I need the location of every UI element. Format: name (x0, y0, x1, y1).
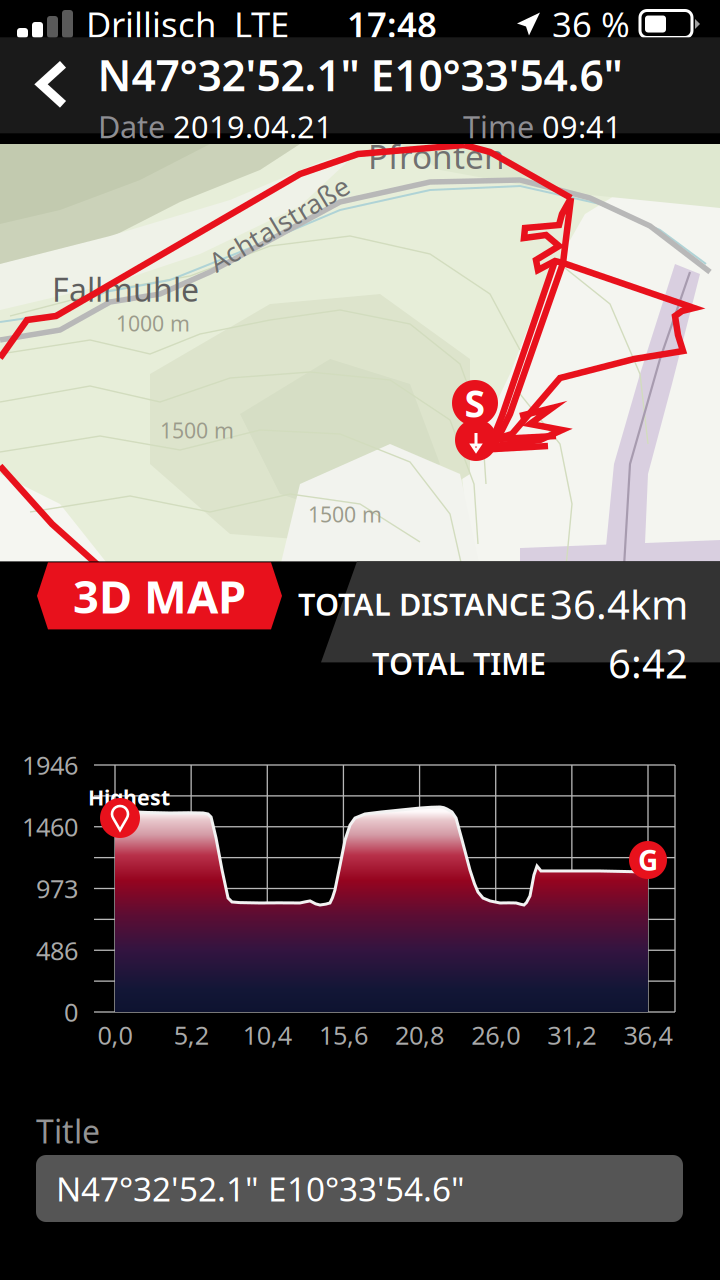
staticText: N47°32'52.1" E10°33'54.6" (56, 1166, 465, 1211)
staticText: G (638, 841, 658, 879)
staticText: Achtalstraße (200, 206, 358, 241)
staticText: 3D MAP (73, 566, 246, 626)
staticText: 36,4 (623, 1018, 672, 1052)
staticText: 0 (64, 995, 78, 1029)
staticText: 1946 (22, 748, 78, 782)
staticText: 17:48 (347, 1, 437, 47)
staticText: 6:42 (608, 636, 688, 690)
staticText: Fallmuhle (52, 268, 199, 310)
staticText: 1000 m (116, 309, 190, 337)
staticText: 26,0 (471, 1018, 520, 1052)
staticText: Date (98, 106, 173, 147)
staticText: N47°32'52.1" E10°33'54.6" (97, 46, 622, 103)
staticText: TOTAL DISTANCE (298, 584, 546, 624)
staticText: Title (36, 1110, 100, 1152)
staticText: 5,2 (174, 1018, 209, 1052)
button[interactable]: Back (18, 40, 86, 128)
staticText: 486 (36, 933, 78, 967)
staticText: 0,0 (97, 1018, 132, 1052)
staticText: 36.4km (550, 577, 688, 630)
staticText: Pfronten (368, 134, 505, 178)
staticText: 20,8 (395, 1018, 444, 1052)
button[interactable]: N47°32'52.1" E10°33'54.6" (36, 1155, 683, 1222)
staticText: 31,2 (547, 1018, 596, 1052)
button[interactable]: 3D MAP (37, 562, 282, 629)
staticText: Drillisch (86, 1, 216, 47)
staticText: Time (463, 106, 542, 147)
staticText: 15,6 (319, 1018, 368, 1052)
staticText: TOTAL TIME (372, 643, 546, 683)
staticText: 973 (36, 872, 78, 905)
staticText: 2019.04.21 (173, 106, 333, 147)
staticText: 1460 (22, 810, 78, 843)
staticText: 1500 m (308, 500, 382, 528)
staticText: Highest (88, 783, 170, 811)
staticText: S (464, 378, 485, 428)
staticText: 10,4 (243, 1018, 292, 1052)
staticText: 36 % (552, 1, 630, 47)
staticText: 1500 m (160, 416, 234, 444)
staticText: LTE (234, 1, 289, 47)
staticText: 09:41 (542, 106, 622, 147)
